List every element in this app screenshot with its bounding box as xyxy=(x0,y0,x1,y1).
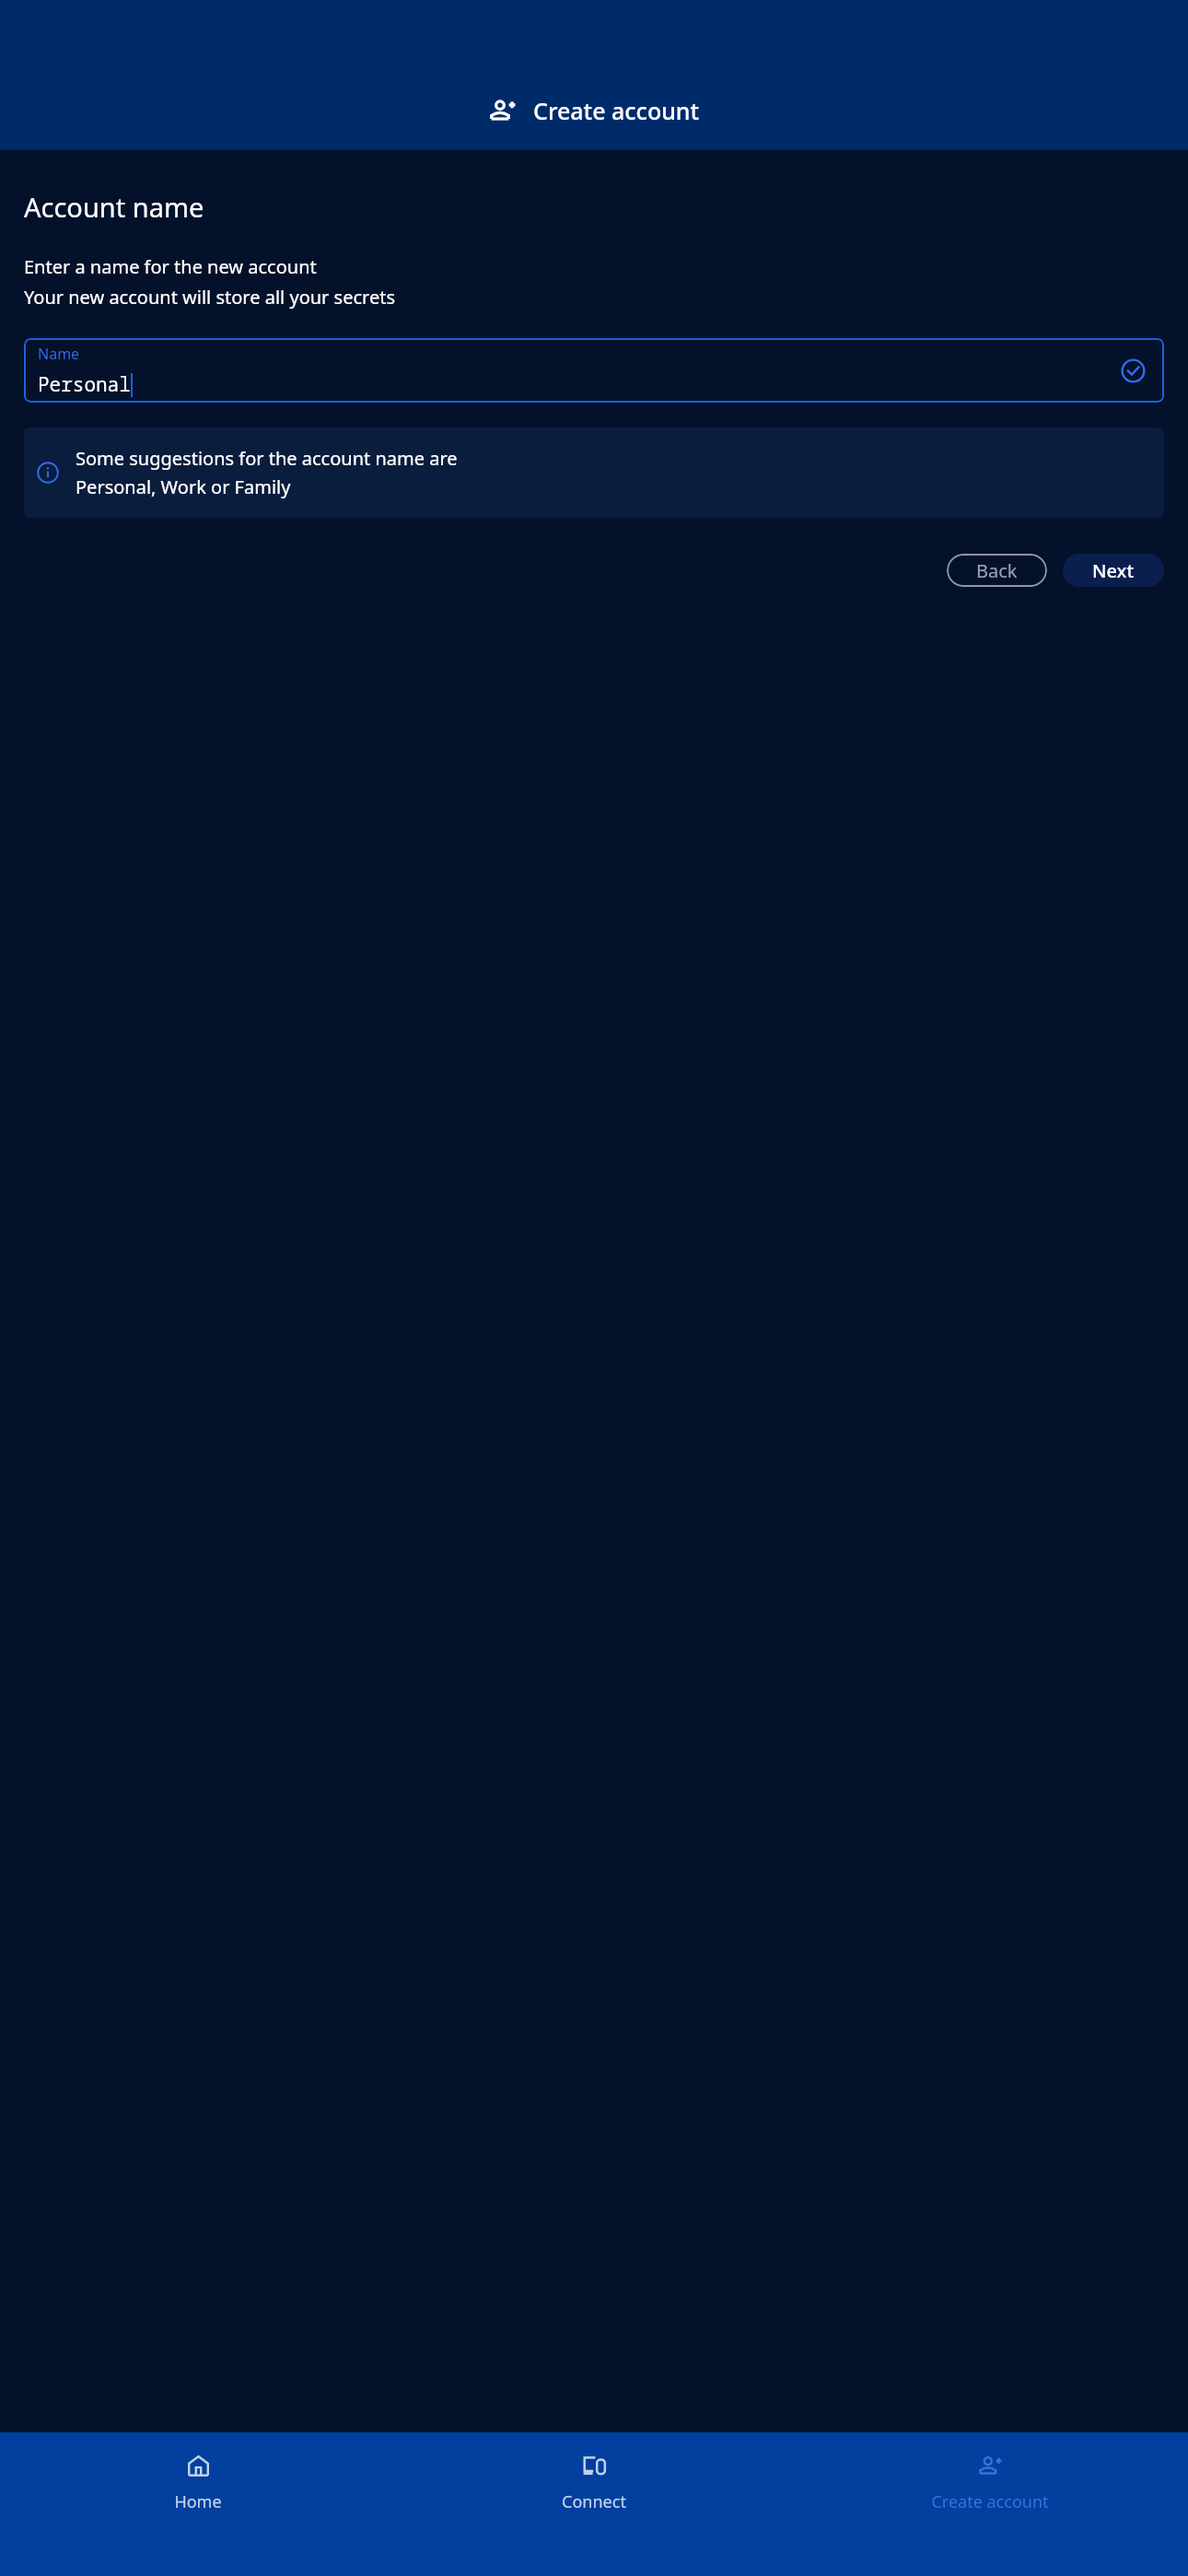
staticText: Some suggestions for the account name ar… xyxy=(76,446,458,471)
staticText: Create account xyxy=(931,2490,1049,2513)
staticText: Create account xyxy=(533,95,700,126)
staticText: Personal xyxy=(38,371,131,398)
button[interactable]: Home xyxy=(0,2432,396,2576)
staticText: Back xyxy=(976,558,1018,583)
other: Name is valid xyxy=(1121,358,1146,383)
button[interactable]: Connect xyxy=(396,2432,792,2576)
staticText: Name xyxy=(38,344,80,364)
staticText: Home xyxy=(174,2490,222,2513)
staticText: Account name xyxy=(24,189,204,225)
staticText: Next xyxy=(1092,558,1135,583)
button[interactable]: Create account xyxy=(792,2432,1188,2576)
button[interactable]: Name xyxy=(24,338,1164,403)
staticText: Connect xyxy=(562,2490,626,2513)
button[interactable]: Some suggestions for the account name ar… xyxy=(24,427,1164,518)
staticText: Enter a name for the new account xyxy=(24,254,317,279)
button[interactable]: Next xyxy=(1063,554,1164,587)
staticText: Personal, Work or Family xyxy=(76,474,291,499)
staticText: Your new account will store all your sec… xyxy=(24,285,395,310)
button[interactable]: Back xyxy=(947,554,1047,587)
